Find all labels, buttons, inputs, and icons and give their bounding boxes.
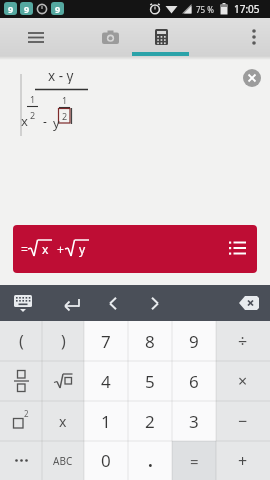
staticText: x: [21, 112, 28, 130]
staticText: ): [61, 330, 66, 352]
button[interactable]: [52, 285, 92, 321]
staticText: y: [53, 114, 60, 132]
button[interactable]: 2: [128, 401, 172, 441]
button[interactable]: 7: [84, 321, 128, 361]
staticText: 2: [24, 408, 29, 419]
button[interactable]: (: [0, 321, 42, 361]
staticText: +: [57, 241, 64, 257]
staticText: 2: [30, 109, 36, 121]
button[interactable]: ): [42, 321, 84, 361]
staticText: 0: [101, 449, 111, 472]
staticText: 9: [189, 330, 199, 353]
staticText: 8: [145, 330, 155, 353]
staticText: 1: [101, 410, 111, 433]
button[interactable]: [0, 441, 42, 480]
button[interactable]: ×: [216, 361, 270, 401]
staticText: 6: [189, 370, 199, 393]
staticText: ÷: [238, 330, 248, 352]
button[interactable]: .: [128, 441, 172, 480]
button[interactable]: 5: [128, 361, 172, 401]
button[interactable]: 3: [172, 401, 216, 441]
button[interactable]: 8: [128, 321, 172, 361]
button[interactable]: [243, 69, 261, 87]
staticText: 17:05: [234, 2, 260, 16]
button[interactable]: [228, 285, 270, 321]
button[interactable]: [95, 285, 131, 321]
button[interactable]: 0: [84, 441, 128, 480]
staticText: 9: [24, 3, 30, 15]
staticText: =: [190, 451, 199, 471]
staticText: 9: [8, 3, 14, 15]
staticText: -: [43, 113, 47, 129]
staticText: 2: [145, 410, 155, 433]
button[interactable]: 4: [84, 361, 128, 401]
button[interactable]: x: [42, 401, 84, 441]
staticText: 1: [62, 94, 68, 106]
staticText: (: [19, 330, 24, 352]
button[interactable]: [86, 18, 134, 56]
staticText: .: [148, 449, 153, 472]
staticText: 3: [189, 410, 199, 433]
staticText: −: [238, 410, 248, 432]
staticText: 75 %: [196, 4, 214, 15]
staticText: 1: [30, 93, 36, 105]
button[interactable]: [42, 361, 84, 401]
button[interactable]: 6: [172, 361, 216, 401]
button[interactable]: =: [13, 225, 257, 273]
button[interactable]: +: [216, 441, 270, 480]
button[interactable]: ÷: [216, 321, 270, 361]
staticText: 7: [101, 330, 111, 353]
staticText: x - y: [48, 67, 74, 84]
staticText: =: [21, 241, 28, 257]
button[interactable]: [137, 285, 173, 321]
button[interactable]: −: [216, 401, 270, 441]
button[interactable]: [238, 18, 270, 56]
staticText: +: [238, 450, 248, 472]
staticText: y: [79, 241, 86, 257]
button[interactable]: 2: [0, 401, 42, 441]
button[interactable]: [2, 285, 44, 321]
button[interactable]: 1: [84, 401, 128, 441]
staticText: x: [59, 412, 67, 431]
button[interactable]: 9: [172, 321, 216, 361]
button[interactable]: =: [172, 441, 216, 480]
staticText: 5: [145, 370, 155, 393]
button[interactable]: [14, 18, 58, 56]
staticText: ×: [238, 370, 248, 392]
button[interactable]: ABC: [42, 441, 84, 480]
staticText: ABC: [53, 454, 73, 468]
staticText: 9: [55, 3, 61, 15]
button[interactable]: [0, 361, 42, 401]
staticText: 2: [62, 110, 68, 122]
staticText: 4: [101, 370, 111, 393]
button[interactable]: [137, 18, 185, 56]
staticText: x: [42, 241, 49, 257]
